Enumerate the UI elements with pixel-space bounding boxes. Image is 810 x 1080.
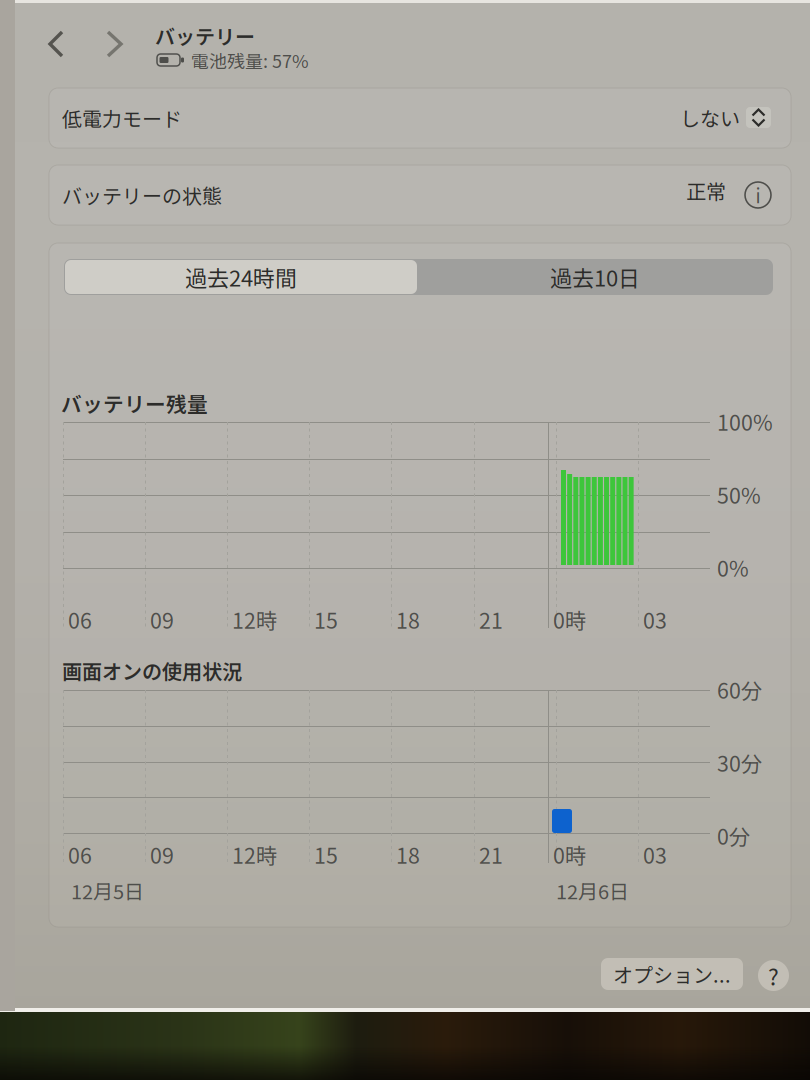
button[interactable]: Forward — [96, 22, 134, 66]
button[interactable]: Back — [38, 22, 76, 66]
staticText: 50% — [717, 479, 761, 510]
staticText: 09 — [150, 839, 174, 870]
staticText: 電池残量: 57% — [191, 47, 309, 73]
button[interactable]: Help — [758, 960, 789, 991]
staticText: 18 — [396, 839, 420, 870]
staticText: 正常 — [686, 176, 726, 205]
staticText: 06 — [68, 604, 92, 635]
staticText: 12時 — [232, 604, 277, 635]
staticText: 画面オンの使用状況 — [62, 656, 242, 685]
staticText: 60分 — [717, 674, 762, 705]
staticText: バッテリー — [155, 21, 255, 50]
staticText: 03 — [643, 839, 667, 870]
button[interactable]: バッテリーの状態 — [49, 165, 791, 225]
staticText: 0% — [717, 552, 749, 583]
staticText: バッテリー残量 — [61, 388, 208, 418]
staticText: 18 — [396, 604, 420, 635]
staticText: 09 — [150, 604, 174, 635]
staticText: 0時 — [553, 604, 586, 635]
staticText: 12時 — [232, 839, 277, 870]
staticText: 30分 — [717, 747, 762, 778]
staticText: オプション... — [613, 959, 731, 988]
staticText: 03 — [643, 604, 667, 635]
staticText: 0分 — [717, 820, 750, 851]
staticText: 低電力モード — [62, 103, 182, 132]
button[interactable]: オプション... — [601, 958, 743, 990]
staticText: 100% — [717, 406, 773, 437]
staticText: i — [755, 181, 760, 208]
staticText: 12月6日 — [556, 876, 629, 905]
staticText: 0時 — [553, 839, 586, 870]
staticText: 21 — [479, 839, 503, 870]
button[interactable]: Battery health info — [745, 182, 771, 208]
staticText: 12月5日 — [71, 876, 144, 905]
staticText: 21 — [479, 604, 503, 635]
staticText: 15 — [314, 839, 338, 870]
staticText: 過去10日 — [550, 261, 640, 293]
staticText: 06 — [68, 839, 92, 870]
staticText: ? — [768, 959, 779, 992]
staticText: しない — [680, 103, 740, 132]
staticText: 15 — [314, 604, 338, 635]
button[interactable]: 過去10日 — [418, 260, 772, 294]
staticText: バッテリーの状態 — [62, 180, 222, 209]
button[interactable]: 過去24時間 — [65, 260, 417, 294]
staticText: 過去24時間 — [185, 261, 297, 293]
button[interactable]: 低電力モード — [49, 88, 791, 148]
